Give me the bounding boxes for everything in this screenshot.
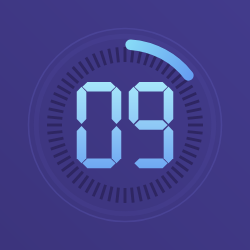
button[interactable]: Timer, 09 remaining (0, 0, 250, 250)
